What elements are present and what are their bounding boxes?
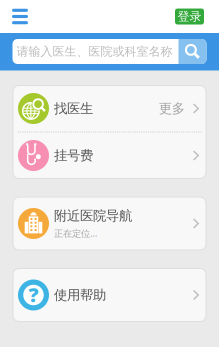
button[interactable]: Search xyxy=(178,39,206,64)
button[interactable]: 找医生 xyxy=(13,85,206,131)
staticText: 找医生 xyxy=(54,100,93,117)
button[interactable]: Menu xyxy=(0,0,38,33)
staticText: 使用帮助 xyxy=(54,287,106,303)
staticText: 正在定位… xyxy=(54,227,97,239)
button[interactable]: 挂号费 xyxy=(13,132,206,178)
button[interactable]: 登录 xyxy=(175,8,204,24)
staticText: 挂号费 xyxy=(54,147,93,164)
staticText: 请输入医生、医院或科室名称 xyxy=(16,44,172,59)
staticText: 附近医院导航 xyxy=(54,208,132,224)
staticText: 登录 xyxy=(177,9,201,24)
staticText: 更多 xyxy=(159,100,185,117)
button[interactable]: ? xyxy=(13,268,206,321)
button[interactable]: 附近医院导航 xyxy=(13,197,206,250)
staticText: ? xyxy=(28,281,38,308)
